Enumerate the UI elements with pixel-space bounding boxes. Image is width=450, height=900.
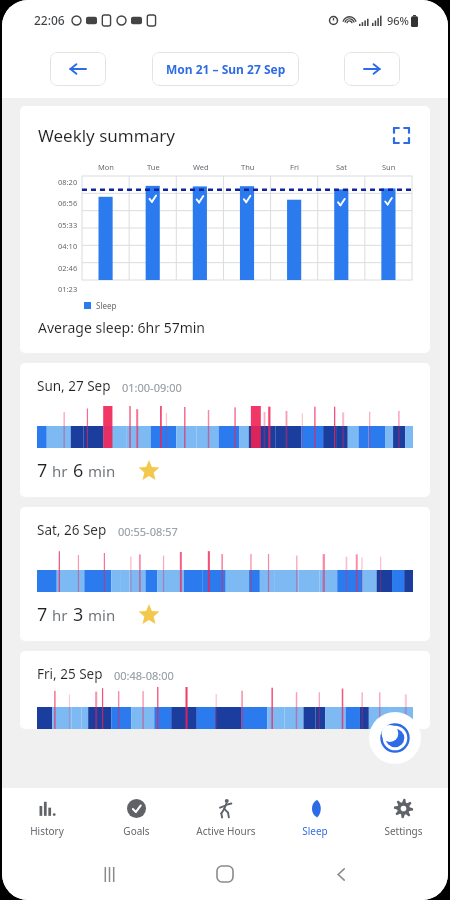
staticText: Sun, 27 Sep bbox=[37, 377, 111, 395]
staticText: Fri, 25 Sep bbox=[37, 665, 103, 683]
button[interactable]: History bbox=[2, 788, 92, 848]
staticText: 22:06 bbox=[34, 12, 65, 28]
staticText: Average sleep: 6hr 57min bbox=[38, 318, 206, 337]
button[interactable]: Sun, 27 Sep bbox=[20, 363, 430, 497]
staticText: Sleep bbox=[302, 824, 328, 838]
button[interactable]: Weekly summary bbox=[20, 106, 430, 353]
staticText: Sat, 26 Sep bbox=[37, 521, 107, 539]
staticText: Settings bbox=[384, 824, 423, 838]
staticText: Sat bbox=[336, 162, 348, 172]
staticText: History bbox=[30, 824, 64, 838]
staticText: 96% bbox=[387, 13, 409, 28]
button[interactable]: Back bbox=[324, 857, 358, 891]
staticText: Thu bbox=[241, 162, 255, 172]
staticText: 01:00-09:00 bbox=[122, 380, 182, 395]
button[interactable]: Recent apps bbox=[92, 857, 126, 891]
staticText: Weekly summary bbox=[38, 124, 175, 147]
button[interactable]: Active Hours bbox=[181, 788, 270, 848]
staticText: 04:10 bbox=[58, 241, 78, 251]
staticText: Wed bbox=[193, 162, 209, 172]
staticText: Sleep bbox=[96, 300, 117, 311]
button[interactable]: Sat, 26 Sep bbox=[20, 507, 430, 641]
button[interactable]: Fri, 25 Sep bbox=[20, 651, 430, 729]
staticText: hr bbox=[52, 461, 68, 481]
button[interactable]: Goals bbox=[92, 788, 181, 848]
staticText: Fri bbox=[290, 162, 299, 172]
staticText: 08:20 bbox=[58, 177, 78, 187]
staticText: 05:33 bbox=[58, 220, 78, 230]
staticText: Mon 21 – Sun 27 Sep bbox=[166, 61, 286, 77]
staticText: Goals bbox=[123, 824, 150, 838]
staticText: 7 bbox=[37, 458, 48, 483]
staticText: Mon bbox=[98, 162, 114, 172]
button[interactable]: Start sleep tracking bbox=[369, 712, 421, 764]
button[interactable]: Sleep bbox=[270, 788, 359, 848]
staticText: 6 bbox=[73, 458, 84, 483]
button[interactable]: Next week bbox=[344, 52, 400, 86]
staticText: 3 bbox=[73, 602, 84, 627]
staticText: 7 bbox=[37, 602, 48, 627]
button[interactable]: Previous week bbox=[50, 52, 106, 86]
staticText: min bbox=[88, 461, 116, 481]
staticText: Tue bbox=[147, 162, 160, 172]
staticText: 01:23 bbox=[58, 284, 78, 294]
button[interactable]: Settings bbox=[359, 788, 448, 848]
button[interactable]: Expand chart bbox=[388, 122, 414, 148]
button[interactable]: Mon 21 – Sun 27 Sep bbox=[152, 52, 299, 86]
staticText: hr bbox=[52, 605, 68, 625]
staticText: 00:55-08:57 bbox=[118, 524, 178, 539]
staticText: min bbox=[88, 605, 116, 625]
staticText: 02:46 bbox=[58, 263, 78, 273]
staticText: 00:48-08:00 bbox=[114, 668, 174, 683]
staticText: Sun bbox=[382, 162, 396, 172]
staticText: Active Hours bbox=[196, 824, 256, 838]
staticText: 06:56 bbox=[58, 198, 78, 208]
button[interactable]: Home bbox=[208, 857, 242, 891]
